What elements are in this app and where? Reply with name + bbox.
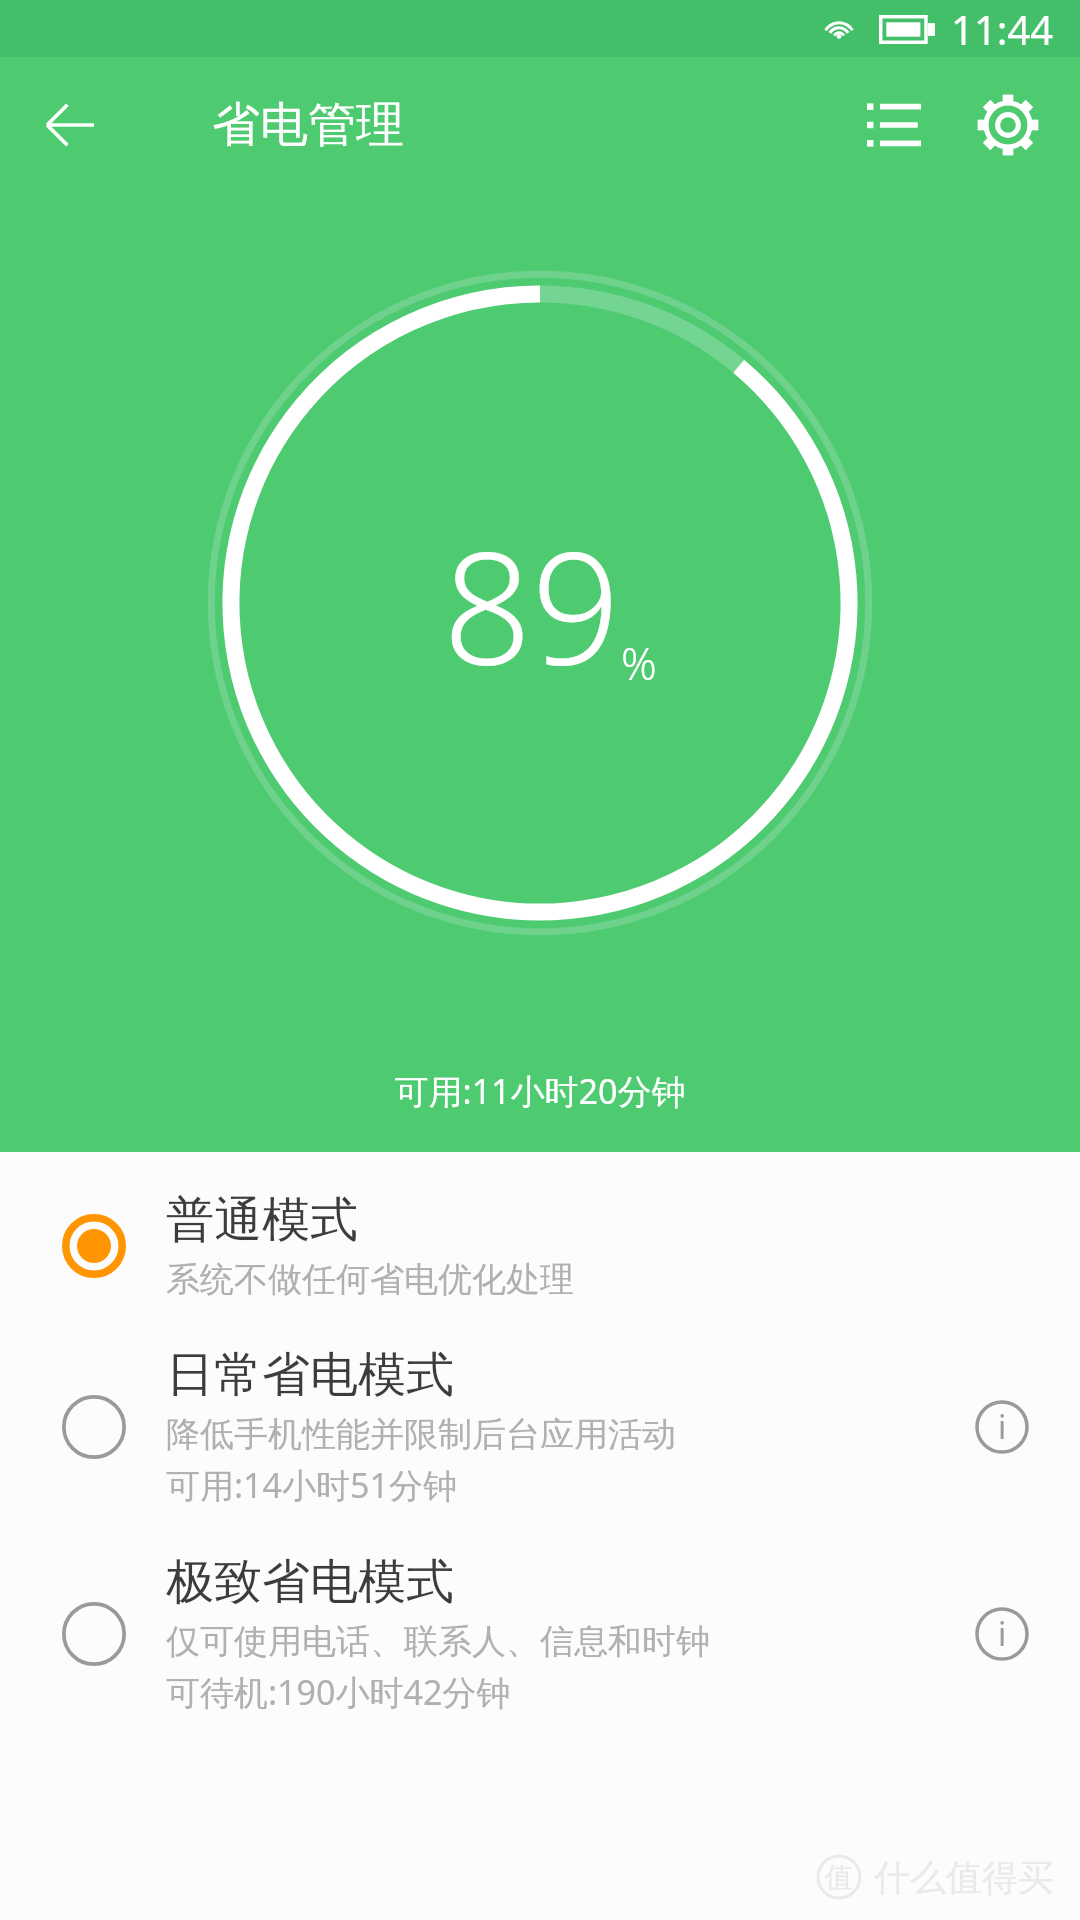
staticText: % bbox=[621, 633, 657, 693]
staticText: 普通模式 bbox=[166, 1190, 358, 1250]
staticText: 可用:14小时51分钟 bbox=[166, 1462, 457, 1508]
button[interactable]: 极致省电模式 bbox=[0, 1530, 1080, 1737]
staticText: 极致省电模式 bbox=[166, 1552, 454, 1612]
staticText: 系统不做任何省电优化处理 bbox=[166, 1258, 574, 1301]
button[interactable]: List bbox=[846, 77, 942, 173]
button[interactable]: Back bbox=[26, 81, 114, 169]
button[interactable]: 日常省电模式 bbox=[0, 1323, 1080, 1530]
staticText: 仅可使用电话、联系人、信息和时钟 bbox=[166, 1620, 710, 1663]
staticText: 可用:11小时20分钟 bbox=[0, 1068, 1080, 1114]
staticText: 89 bbox=[443, 498, 621, 709]
staticText: 11:44 bbox=[951, 2, 1054, 56]
staticText: 日常省电模式 bbox=[166, 1345, 454, 1405]
staticText: 可待机:190小时42分钟 bbox=[166, 1669, 511, 1715]
staticText: 什么值得买 bbox=[874, 1855, 1054, 1900]
button[interactable]: Settings bbox=[960, 77, 1056, 173]
button[interactable]: 普通模式 bbox=[0, 1168, 1080, 1323]
staticText: 省电管理 bbox=[212, 95, 404, 155]
staticText: 值 bbox=[825, 1860, 853, 1895]
staticText: i bbox=[998, 1405, 1007, 1449]
button[interactable]: Info bbox=[960, 1385, 1044, 1469]
button[interactable]: Info bbox=[960, 1592, 1044, 1676]
staticText: 降低手机性能并限制后台应用活动 bbox=[166, 1413, 676, 1456]
staticText: i bbox=[998, 1612, 1007, 1656]
